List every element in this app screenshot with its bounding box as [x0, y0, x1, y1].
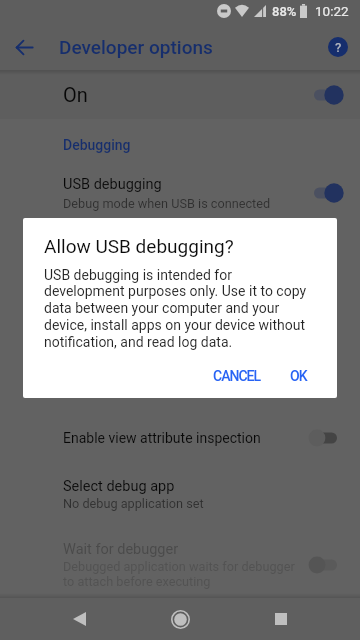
staticText: 88% [272, 4, 297, 19]
staticText: USB debugging [63, 176, 162, 193]
button[interactable]: CANCEL [205, 360, 269, 392]
button[interactable]: Home [158, 598, 202, 640]
button[interactable]: Toggle off [308, 428, 344, 448]
staticText: CANCEL [213, 368, 261, 384]
staticText: Select debug app [63, 478, 175, 495]
button[interactable]: Enable view attribute inspection [0, 416, 360, 460]
staticText: Debugging [63, 137, 131, 153]
button[interactable]: Toggle on [308, 85, 344, 105]
button[interactable]: Recent apps [259, 598, 303, 640]
staticText: Allow USB debugging? [44, 235, 234, 257]
staticText: Debug mode when USB is connected [63, 196, 271, 211]
staticText: ? [335, 40, 342, 55]
staticText: Debugged application waits for debugger … [63, 559, 295, 589]
button[interactable]: OK [282, 360, 315, 392]
button[interactable]: Toggle on [308, 183, 344, 203]
button[interactable]: Select debug app [0, 470, 360, 518]
button[interactable]: Back [57, 598, 101, 640]
staticText: On [63, 83, 88, 106]
button[interactable]: Navigate up [8, 31, 40, 63]
staticText: Enable view attribute inspection [63, 430, 261, 446]
staticText: Wait for debugger [63, 541, 179, 558]
staticText: No debug application set [63, 496, 204, 511]
button[interactable]: USB debugging [0, 169, 360, 217]
button[interactable]: On [0, 70, 360, 119]
button[interactable]: Toggle off [308, 555, 344, 575]
staticText: OK [290, 368, 307, 384]
staticText: Developer options [59, 36, 213, 58]
staticText: USB debugging is intended for developmen… [44, 267, 307, 351]
staticText: 10:22 [315, 3, 349, 19]
button[interactable]: Help [323, 32, 353, 62]
